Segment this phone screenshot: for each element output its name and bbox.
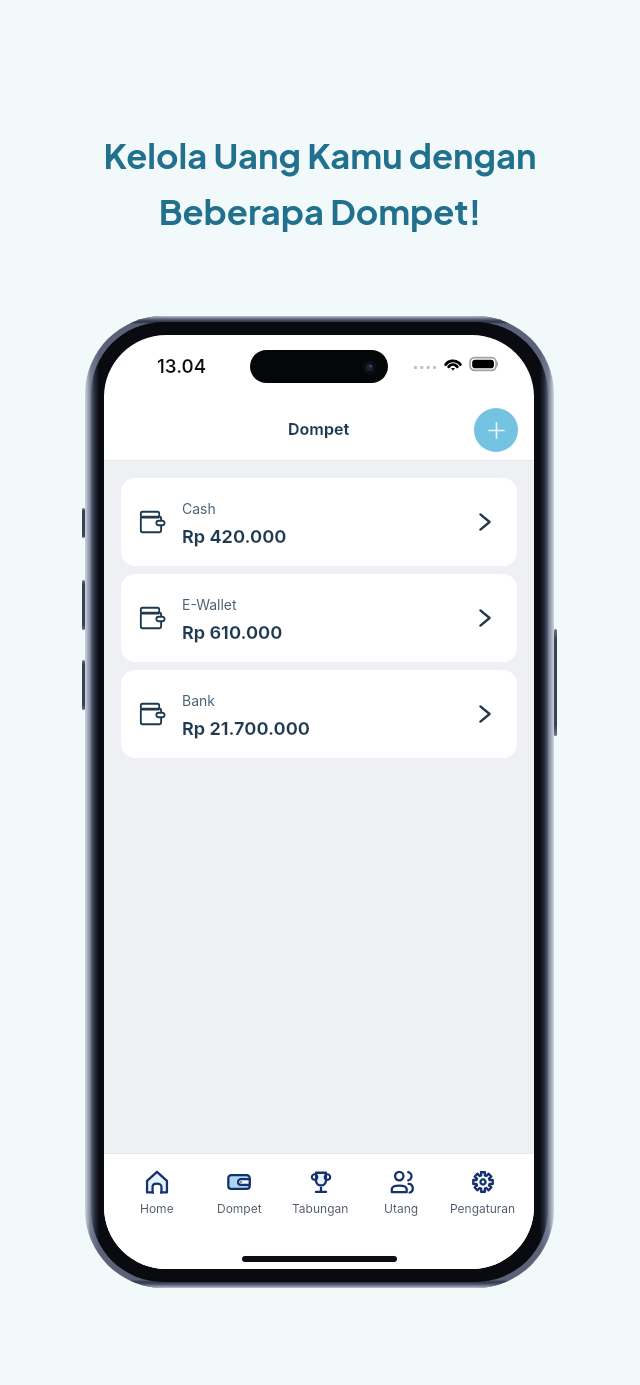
button[interactable]: Home [116, 1153, 198, 1225]
staticText: Kelola Uang Kamu dengan Beberapa Dompet! [0, 133, 640, 233]
staticText: Dompet [217, 1201, 262, 1216]
button[interactable]: Cash [121, 478, 517, 566]
staticText: Tabungan [292, 1201, 349, 1216]
button[interactable]: Utang [361, 1153, 442, 1225]
staticText: Rp 610.000 [182, 622, 283, 644]
staticText: Pengaturan [450, 1201, 516, 1216]
staticText: Dompet [288, 419, 350, 438]
staticText: Bank [182, 692, 215, 709]
staticText: E-Wallet [182, 596, 237, 613]
button[interactable]: Tambah dompet [474, 408, 518, 452]
button[interactable]: Bank [121, 670, 517, 758]
button[interactable]: Pengaturan [442, 1153, 523, 1225]
button[interactable]: Tabungan [280, 1153, 361, 1225]
staticText: 13.04 [157, 355, 207, 377]
staticText: Rp 21.700.000 [182, 718, 310, 740]
button[interactable]: Dompet [198, 1153, 280, 1225]
button[interactable]: E-Wallet [121, 574, 517, 662]
staticText: Rp 420.000 [182, 526, 287, 548]
staticText: Cash [182, 500, 216, 517]
staticText: Utang [384, 1201, 419, 1216]
staticText: Home [140, 1201, 174, 1216]
